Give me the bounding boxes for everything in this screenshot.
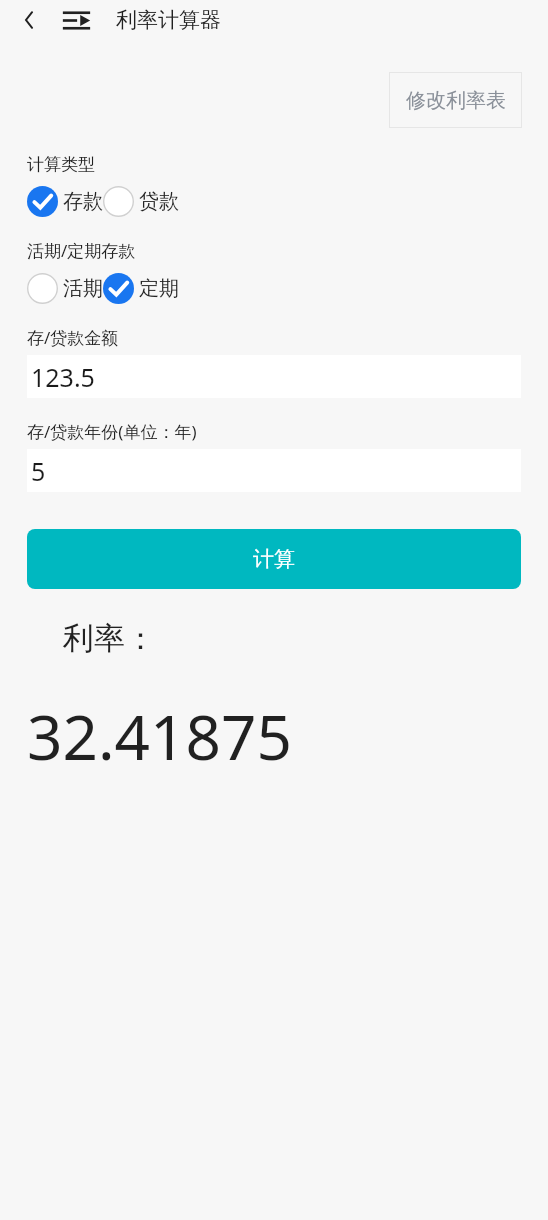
staticText: 计算 bbox=[253, 546, 295, 572]
button[interactable]: 修改利率表 bbox=[389, 72, 522, 128]
staticText: 利率： bbox=[63, 619, 156, 658]
staticText: 32.41875 bbox=[27, 694, 292, 778]
button[interactable]: 123.5 bbox=[27, 355, 521, 398]
staticText: 修改利率表 bbox=[406, 88, 506, 113]
staticText: 活期 bbox=[63, 276, 103, 301]
staticText: 定期 bbox=[139, 276, 179, 301]
button[interactable]: 定期 bbox=[103, 273, 179, 304]
button[interactable]: 活期 bbox=[27, 273, 103, 304]
staticText: 5 bbox=[31, 454, 46, 488]
button[interactable]: Menu bbox=[56, 0, 96, 40]
button[interactable]: 5 bbox=[27, 449, 521, 492]
button[interactable]: Back bbox=[10, 0, 50, 40]
staticText: 计算类型 bbox=[27, 154, 95, 175]
staticText: 存款 bbox=[63, 189, 103, 214]
staticText: 利率计算器 bbox=[116, 7, 221, 33]
staticText: 存/贷款年份(单位：年) bbox=[27, 420, 197, 443]
staticText: 贷款 bbox=[139, 189, 179, 214]
button[interactable]: 计算 bbox=[27, 529, 521, 589]
staticText: 活期/定期存款 bbox=[27, 239, 136, 262]
button[interactable]: 贷款 bbox=[103, 186, 179, 217]
staticText: 存/贷款金额 bbox=[27, 326, 119, 349]
button[interactable]: 存款 bbox=[27, 186, 103, 217]
staticText: 123.5 bbox=[31, 360, 95, 394]
